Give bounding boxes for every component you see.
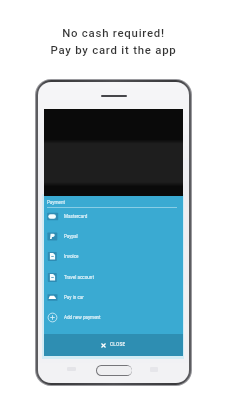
button[interactable]: payment method [44,206,183,226]
other: payment method [47,211,58,222]
button[interactable]: payment method [44,226,183,246]
button[interactable]: payment method [44,287,183,307]
other: payment method [47,251,58,262]
staticText: Mastercard [64,214,88,219]
staticText: Pay in car [64,295,84,300]
button[interactable]: payment method [44,246,183,266]
staticText: Add new payment [64,315,101,320]
staticText: No cash required! [62,26,165,39]
staticText: CLOSE [110,342,126,348]
staticText: Payment [47,200,66,205]
staticText: Paypal [64,234,78,239]
button[interactable]: payment method [44,307,183,327]
other: payment method [47,312,58,323]
button[interactable]: payment method [44,267,183,287]
staticText: Invoice [64,254,79,259]
other: payment method [47,272,58,283]
other: payment method [47,231,58,242]
staticText: Travel account [64,275,94,280]
staticText: Pay by card it the app [50,43,177,56]
other: payment method [47,292,58,303]
button[interactable]: CLOSE [44,334,183,356]
